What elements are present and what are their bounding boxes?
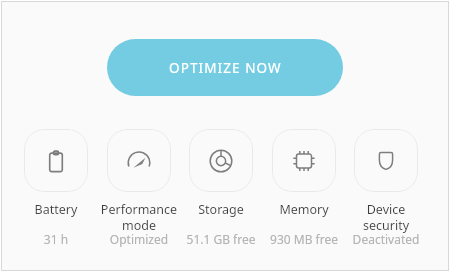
button[interactable]: Device security [345, 129, 427, 233]
button[interactable]: OPTIMIZE NOW [107, 39, 343, 96]
button[interactable]: Storage [180, 129, 262, 218]
staticText: Deactivated [343, 231, 429, 247]
staticText: Performance mode [98, 201, 180, 233]
button[interactable]: Battery [15, 129, 97, 218]
staticText: Storage [180, 201, 262, 218]
button[interactable]: Memory [263, 129, 345, 218]
staticText: Device security [345, 201, 427, 233]
staticText: Battery [15, 201, 97, 218]
staticText: 31 h [13, 231, 99, 247]
button[interactable]: Performance mode [98, 129, 180, 233]
staticText: OPTIMIZE NOW [169, 59, 282, 77]
staticText: Memory [263, 201, 345, 218]
staticText: 51.1 GB free [178, 231, 264, 247]
staticText: Optimized [96, 231, 182, 247]
staticText: 930 MB free [261, 231, 347, 247]
